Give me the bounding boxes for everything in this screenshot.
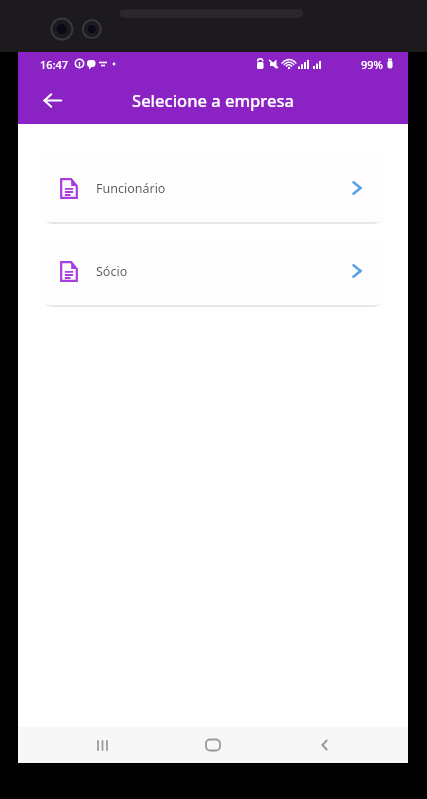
staticText: Funcionário bbox=[96, 180, 166, 197]
button[interactable]: Back bbox=[34, 82, 70, 118]
button[interactable]: Back bbox=[297, 727, 353, 763]
button[interactable]: Recent apps bbox=[74, 727, 130, 763]
button[interactable]: Home bbox=[185, 727, 241, 763]
staticText: Selecione a empresa bbox=[132, 89, 294, 111]
button[interactable]: Sócio bbox=[40, 237, 386, 305]
button[interactable]: Funcionário bbox=[40, 154, 386, 222]
staticText: Sócio bbox=[96, 263, 128, 280]
staticText: 99% bbox=[361, 57, 383, 72]
staticText: 16:47 bbox=[40, 57, 69, 72]
